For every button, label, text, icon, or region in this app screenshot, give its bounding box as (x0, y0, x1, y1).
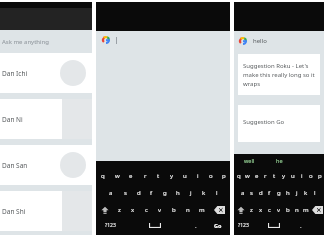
button[interactable]: p (217, 167, 230, 184)
button[interactable]: Shift (96, 201, 113, 218)
button[interactable]: n (181, 201, 195, 218)
staticText: a (241, 189, 245, 197)
button[interactable]: he (264, 154, 294, 167)
button[interactable]: d (132, 184, 145, 201)
button[interactable]: well (234, 154, 264, 167)
other: Google (102, 36, 110, 44)
button[interactable]: q (96, 167, 110, 184)
button[interactable]: Backspace (310, 201, 324, 218)
button[interactable]: Ask me anything (0, 31, 92, 53)
button[interactable]: x (256, 201, 265, 218)
button[interactable]: y (165, 167, 178, 184)
button[interactable]: Space (124, 218, 185, 233)
button[interactable]: i (297, 167, 306, 184)
button[interactable]: f (265, 184, 274, 201)
button[interactable]: p (315, 167, 324, 184)
button[interactable]: a (104, 184, 118, 201)
staticText: e (255, 172, 259, 180)
button[interactable]: Google (96, 31, 230, 49)
staticText: r (144, 172, 147, 180)
button[interactable]: Go (206, 218, 230, 233)
button[interactable]: t (152, 167, 165, 184)
button[interactable]: r (138, 167, 152, 184)
button[interactable]: w (243, 167, 252, 184)
button[interactable]: b (283, 201, 292, 218)
staticText: u (183, 172, 187, 180)
button[interactable]: u (178, 167, 191, 184)
button[interactable]: h (171, 184, 184, 201)
button[interactable]: i (191, 167, 204, 184)
staticText: d (259, 189, 263, 197)
button[interactable]: l (310, 184, 319, 201)
button[interactable]: j (292, 184, 301, 201)
staticText: ?123 (105, 222, 116, 229)
button[interactable]: s (247, 184, 256, 201)
staticText: f (268, 189, 271, 197)
staticText: f (150, 189, 153, 197)
staticText: d (137, 189, 141, 197)
button[interactable]: s (118, 184, 132, 201)
button[interactable]: l (210, 184, 223, 201)
button[interactable]: . (294, 218, 308, 233)
staticText: w (115, 172, 120, 180)
button[interactable]: Suggestion Go (238, 105, 320, 142)
button[interactable]: n (292, 201, 301, 218)
button[interactable]: f (145, 184, 158, 201)
staticText: t (157, 172, 160, 180)
button[interactable]: Suggestion Roku - Let's make this really… (238, 54, 320, 95)
button[interactable]: Space (253, 218, 294, 233)
button[interactable]: Dan Ichi (0, 53, 92, 93)
staticText: j (296, 189, 298, 197)
button[interactable]: u (288, 167, 297, 184)
button[interactable]: r (261, 167, 270, 184)
button[interactable]: x (126, 201, 139, 218)
button[interactable]: j (184, 184, 197, 201)
button[interactable]: g (274, 184, 283, 201)
staticText: p (318, 172, 322, 180)
button[interactable]: o (204, 167, 217, 184)
button[interactable]: k (301, 184, 310, 201)
button[interactable]: m (195, 201, 209, 218)
staticText: c (145, 206, 148, 214)
staticText: a (109, 189, 113, 197)
button[interactable]: w (110, 167, 124, 184)
staticText: l (314, 189, 316, 197)
button[interactable]: Shift (234, 201, 247, 218)
button[interactable]: Dan San (0, 145, 92, 185)
button[interactable]: v (153, 201, 167, 218)
button[interactable]: k (197, 184, 210, 201)
staticText: t (273, 172, 276, 180)
button[interactable]: t (270, 167, 279, 184)
staticText: ?123 (238, 222, 249, 229)
button[interactable]: z (247, 201, 256, 218)
button[interactable]: . (185, 218, 206, 233)
staticText: z (250, 206, 253, 214)
staticText: o (209, 172, 213, 180)
button[interactable]: v (274, 201, 283, 218)
button[interactable]: Dan Ni (0, 99, 92, 139)
button[interactable]: c (265, 201, 274, 218)
button[interactable]: Google (234, 31, 324, 51)
button[interactable]: a (238, 184, 247, 201)
button[interactable]: b (167, 201, 181, 218)
button[interactable]: h (283, 184, 292, 201)
staticText: q (101, 172, 105, 180)
staticText: Dan Ni (2, 115, 62, 124)
button[interactable]: e (124, 167, 138, 184)
button[interactable]: z (113, 201, 126, 218)
button[interactable]: Dan Shi (0, 191, 92, 231)
button[interactable]: e (252, 167, 261, 184)
button[interactable]: o (306, 167, 315, 184)
button[interactable]: ?123 (96, 218, 124, 233)
button[interactable]: Backspace (209, 201, 230, 218)
button[interactable]: y (279, 167, 288, 184)
button[interactable]: c (139, 201, 153, 218)
staticText: e (129, 172, 133, 180)
button[interactable]: d (256, 184, 265, 201)
button[interactable]: ?123 (234, 218, 253, 233)
button[interactable]: q (234, 167, 243, 184)
button[interactable]: g (158, 184, 171, 201)
staticText: k (304, 189, 308, 197)
button[interactable]: m (301, 201, 310, 218)
staticText: z (118, 206, 121, 214)
